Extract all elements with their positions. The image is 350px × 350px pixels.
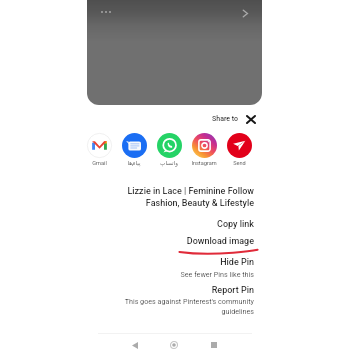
button[interactable]: Gmail bbox=[81, 133, 117, 167]
staticText: Gmail bbox=[92, 160, 107, 167]
button[interactable]: Instagram bbox=[186, 133, 222, 167]
staticText: Share to bbox=[212, 115, 239, 123]
button[interactable]: Share to bbox=[212, 115, 239, 123]
staticText: واتساپ bbox=[160, 160, 178, 167]
button[interactable]: guidelines bbox=[104, 307, 254, 315]
button[interactable]: More options bbox=[97, 7, 115, 17]
button[interactable]: Fashion, Beauty & Lifestyle bbox=[104, 198, 254, 209]
staticText: Lizzie in Lace | Feminine Follow bbox=[104, 186, 254, 197]
staticText: See fewer Pins like this bbox=[104, 270, 254, 278]
staticText: Fashion, Beauty & Lifestyle bbox=[104, 198, 254, 209]
button[interactable]: Copy link bbox=[104, 219, 254, 230]
staticText: Copy link bbox=[104, 219, 254, 230]
button[interactable]: Download image bbox=[104, 236, 254, 247]
button[interactable]: Send bbox=[221, 133, 257, 167]
button[interactable]: Report Pin bbox=[104, 285, 254, 296]
staticText: Report Pin bbox=[104, 285, 254, 296]
button[interactable]: پیام‌ها bbox=[116, 133, 152, 167]
button[interactable]: Next image bbox=[236, 4, 254, 22]
button[interactable]: Recent apps bbox=[198, 336, 230, 350]
staticText: guidelines bbox=[104, 307, 254, 315]
button[interactable]: This goes against Pinterest's community bbox=[104, 297, 254, 305]
button[interactable]: Hide Pin bbox=[104, 257, 254, 268]
button[interactable]: Home bbox=[158, 336, 190, 350]
button[interactable]: واتساپ bbox=[151, 133, 187, 167]
button[interactable]: See fewer Pins like this bbox=[104, 270, 254, 278]
button[interactable]: Lizzie in Lace | Feminine Follow bbox=[104, 186, 254, 197]
staticText: Instagram bbox=[191, 160, 217, 167]
button[interactable]: Back bbox=[119, 336, 151, 350]
staticText: Send bbox=[233, 160, 246, 167]
button[interactable]: Close bbox=[242, 111, 259, 128]
staticText: Hide Pin bbox=[104, 257, 254, 268]
staticText: This goes against Pinterest's community bbox=[104, 297, 254, 305]
button[interactable]: More options bbox=[87, 0, 262, 105]
staticText: Download image bbox=[104, 236, 254, 247]
staticText: پیام‌ها bbox=[127, 160, 141, 167]
